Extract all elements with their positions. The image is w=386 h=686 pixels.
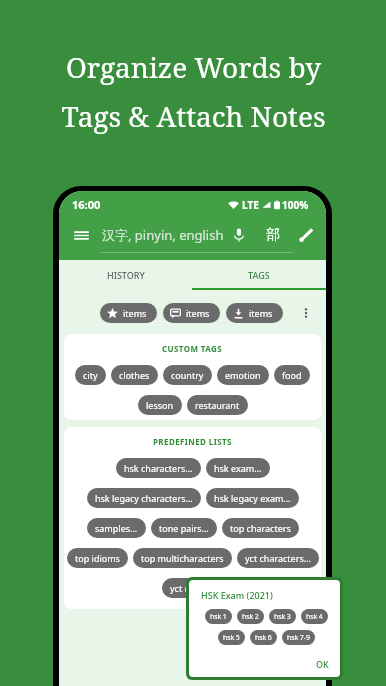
button[interactable]: emotion [217,365,269,385]
staticText: TAGS [248,269,270,281]
staticText: top multicharacters [141,552,224,564]
button[interactable]: Handwriting input [297,226,315,244]
button[interactable]: Radical search [264,226,282,244]
button[interactable]: tone pairs… [151,518,217,538]
button[interactable]: clothes [111,365,158,385]
button[interactable]: hsk 6 [250,630,277,645]
staticText: OK [316,658,329,670]
button[interactable]: items [226,303,283,323]
staticText: city [83,369,98,381]
button[interactable]: top idioms [67,548,128,568]
button[interactable]: hsk 2 [237,609,264,624]
staticText: hsk characters… [124,462,193,474]
staticText: HISTORY [107,269,145,281]
staticText: hsk 1 [210,612,227,622]
button[interactable]: yct exam… [162,578,223,598]
staticText: hsk 3 [274,612,291,622]
staticText: hsk legacy exam… [214,492,291,504]
staticText: hsk 6 [255,633,272,643]
staticText: items [249,307,273,319]
staticText: HSK Exam (2021) [201,589,273,601]
staticText: yct exam… [170,582,215,594]
button[interactable]: Menu [71,225,91,245]
button[interactable]: hsk 5 [218,630,245,645]
staticText: restaurant [195,399,240,411]
button[interactable]: TAGS [192,260,326,290]
staticText: items [186,307,210,319]
button[interactable]: hsk 7-9 [282,630,315,645]
button[interactable]: lesson [138,395,182,415]
button[interactable]: items [100,303,157,323]
staticText: emotion [225,369,261,381]
button[interactable]: Voice search [230,226,248,244]
button[interactable]: hsk 3 [269,609,296,624]
button[interactable]: samples… [87,518,146,538]
button[interactable]: top characters [222,518,299,538]
staticText: Tags & Attach Notes [61,97,326,135]
button[interactable]: food [274,365,310,385]
staticText: 16:00 [72,197,101,212]
button[interactable]: hsk characters… [116,458,201,478]
staticText: LTE [242,198,259,212]
staticText: country [171,369,204,381]
button[interactable]: hsk legacy characters… [87,488,201,508]
staticText: hsk 5 [223,633,240,643]
button[interactable]: hsk 4 [301,609,328,624]
button[interactable]: More options [297,304,315,322]
staticText: lesson [146,399,174,411]
staticText: top characters [230,522,291,534]
staticText: CUSTOM TAGS [162,343,223,354]
button[interactable]: OK [314,657,331,671]
button[interactable]: hsk 1 [205,609,232,624]
staticText: clothes [119,369,150,381]
staticText: hsk 2 [242,612,259,622]
staticText: hsk legacy characters… [95,492,193,504]
button[interactable]: items [163,303,220,323]
button[interactable]: restaurant [187,395,248,415]
staticText: yct characters… [245,552,311,564]
button[interactable]: top multicharacters [133,548,232,568]
button[interactable]: hsk legacy exam… [206,488,299,508]
staticText: Organize Words by [66,48,321,86]
staticText: items [123,307,147,319]
button[interactable]: hsk exam… [206,458,270,478]
staticText: samples… [95,522,138,534]
staticText: hsk 7-9 [287,633,310,643]
staticText: PREDEFINED LISTS [153,436,232,447]
staticText: 部 [266,226,280,244]
button[interactable]: HISTORY [59,260,192,290]
staticText: 100% [282,198,309,212]
staticText: hsk 4 [306,612,323,622]
staticText: food [282,369,302,381]
staticText: tone pairs… [159,522,209,534]
button[interactable]: city [75,365,106,385]
button[interactable]: yct characters… [237,548,319,568]
staticText: 汉字, pinyin, english [102,226,224,244]
staticText: hsk exam… [214,462,262,474]
staticText: top idioms [75,552,120,564]
button[interactable]: country [163,365,212,385]
